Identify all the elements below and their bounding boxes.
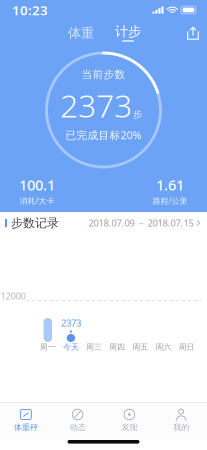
staticText: 10:23 [12,1,48,19]
button[interactable]: 体重 [59,22,103,44]
staticText: 今天 [63,342,79,352]
staticText: 周三 [86,342,102,352]
staticText: 2373 [60,84,132,126]
staticText: 2018.07.09 － 2018.07.15 [88,217,193,229]
staticText: 12000 [0,290,25,302]
staticText: 发现 [121,422,137,432]
staticText: 动态 [70,422,86,432]
staticText: 体重 [68,25,94,41]
button[interactable]: Share [185,25,200,41]
button[interactable]: 我的 [155,402,207,440]
staticText: 步数记录 [11,216,59,230]
staticText: 2373 [61,317,81,329]
button[interactable]: 计步 [106,22,150,44]
staticText: 当前步数 [81,68,125,81]
button[interactable]: 发现 [103,402,155,440]
staticText: 1.61 [156,175,184,194]
staticText: 步 [133,109,142,120]
staticText: 已完成目标20% [65,128,141,142]
staticText: 100.1 [19,175,55,194]
staticText: 周六 [155,342,171,352]
button[interactable]: 动态 [52,402,104,440]
staticText: 周日 [178,342,194,352]
staticText: 计步 [115,23,141,40]
staticText: 体重秤 [14,422,38,432]
staticText: 周一 [40,342,56,352]
staticText: 路程/公里 [152,195,187,206]
button[interactable]: 2018.07.09 － 2018.07.15 [88,217,200,229]
staticText: 我的 [173,422,189,432]
staticText: 周五 [132,342,148,352]
staticText: 消耗/大卡 [19,195,54,206]
button[interactable]: 体重秤 [0,402,52,440]
staticText: 周四 [109,342,125,352]
